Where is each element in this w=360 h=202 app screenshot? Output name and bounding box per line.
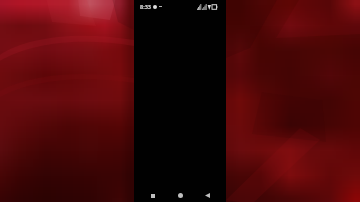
button[interactable]: Home [175,190,186,201]
button[interactable]: Recent apps [147,190,158,201]
button[interactable]: Back [202,190,213,201]
staticText: 8:33 [140,3,151,10]
